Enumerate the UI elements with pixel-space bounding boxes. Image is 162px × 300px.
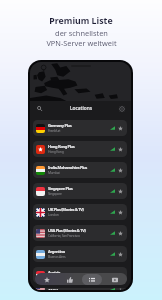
button[interactable]: Austria xyxy=(33,267,127,283)
button[interactable]: India-Maharashtra Plus xyxy=(33,162,127,178)
staticText: India-Maharashtra Plus xyxy=(48,165,87,170)
staticText: Singapore Plus xyxy=(48,186,73,191)
staticText: UK Plus (Movies & TV) xyxy=(48,207,84,212)
button[interactable]: All locations xyxy=(82,274,102,285)
button[interactable]: Hong Kong Plus xyxy=(33,141,127,157)
button[interactable]: Argentina xyxy=(33,246,127,262)
button[interactable]: Search xyxy=(35,104,44,113)
staticText: VPN-Server weltweit xyxy=(46,38,117,48)
staticText: USA Plus (Movies & TV) xyxy=(48,228,86,233)
staticText: Locations xyxy=(70,105,92,112)
button[interactable]: Germany Plus xyxy=(33,120,127,136)
staticText: All Others xyxy=(48,288,65,290)
button[interactable]: Favourites xyxy=(37,274,57,285)
staticText: Vienna xyxy=(48,275,58,280)
staticText: California, San Francisco xyxy=(48,233,80,238)
button[interactable]: UK Plus (Movies & TV) xyxy=(33,204,127,220)
staticText: Frankfurt xyxy=(48,128,61,133)
staticText: London xyxy=(48,212,59,217)
staticText: Germany Plus xyxy=(48,123,72,128)
button[interactable]: Singapore Plus xyxy=(33,183,127,199)
staticText: Singapore xyxy=(48,191,62,196)
staticText: Mumbai xyxy=(48,170,60,175)
staticText: der schnellsten xyxy=(55,28,108,38)
button[interactable]: Streaming xyxy=(105,274,125,285)
staticText: Argentina xyxy=(48,249,65,254)
staticText: Hong Kong xyxy=(48,149,64,154)
button[interactable]: Settings xyxy=(117,104,126,113)
staticText: Premium Liste xyxy=(49,15,113,27)
staticText: Austria xyxy=(48,270,61,275)
button[interactable]: USA Plus (Movies & TV) xyxy=(33,225,127,241)
button[interactable]: Recommended xyxy=(60,274,80,285)
staticText: Hong Kong Plus xyxy=(48,144,75,149)
button[interactable]: All Others xyxy=(33,288,127,290)
staticText: Buenos Aires xyxy=(48,254,66,259)
